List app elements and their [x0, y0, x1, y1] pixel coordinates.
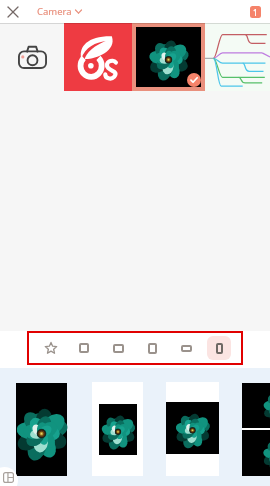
button[interactable]: 4:3 [106, 336, 130, 360]
staticText: 1 [253, 7, 258, 18]
button[interactable]: Selected count 1 [250, 6, 261, 18]
staticText: Camera [37, 5, 72, 18]
button[interactable]: 1:1 [72, 336, 96, 360]
button[interactable]: 3:4 [140, 336, 164, 360]
button[interactable]: Layout centered [92, 382, 143, 476]
button[interactable]: 16:9 [174, 336, 198, 360]
button[interactable]: Layout split [242, 383, 270, 476]
button[interactable]: Change layout [0, 467, 18, 486]
button[interactable]: Close [2, 1, 24, 23]
button[interactable]: Open camera [0, 23, 64, 91]
button[interactable] [64, 23, 132, 91]
button[interactable]: Selected photo [136, 27, 201, 87]
button[interactable]: Layout full [16, 383, 67, 476]
button[interactable]: Free ratio [39, 336, 63, 360]
button[interactable]: Layout band [166, 382, 219, 476]
button[interactable]: Camera [35, 2, 84, 21]
button[interactable]: Mind map photo [205, 23, 270, 91]
button[interactable]: 9:16 [207, 336, 231, 360]
